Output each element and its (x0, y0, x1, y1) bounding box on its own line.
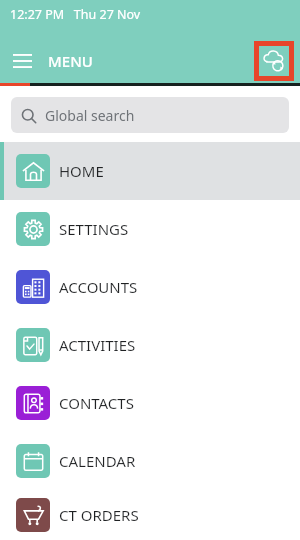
button[interactable]: CT ORDERS (0, 490, 300, 540)
button[interactable]: CONTACTS (0, 374, 300, 432)
staticText: ACCOUNTS (59, 277, 138, 297)
staticText: Global search (45, 106, 135, 125)
staticText: SETTINGS (59, 219, 129, 239)
button[interactable]: Global search (11, 97, 289, 133)
staticText: 12:27 PM Thu 27 Nov (10, 6, 141, 23)
button[interactable]: ACCOUNTS (0, 258, 300, 316)
button[interactable]: HOME (0, 142, 300, 200)
button[interactable]: Sync (259, 46, 289, 76)
button[interactable]: Open navigation menu (0, 39, 44, 83)
staticText: MENU (48, 51, 93, 71)
staticText: CT ORDERS (59, 505, 139, 525)
button[interactable]: CALENDAR (0, 432, 300, 490)
staticText: CALENDAR (59, 451, 136, 471)
button[interactable]: SETTINGS (0, 200, 300, 258)
staticText: HOME (59, 161, 104, 181)
staticText: ACTIVITIES (59, 335, 136, 355)
staticText: CONTACTS (59, 393, 134, 413)
button[interactable]: ACTIVITIES (0, 316, 300, 374)
